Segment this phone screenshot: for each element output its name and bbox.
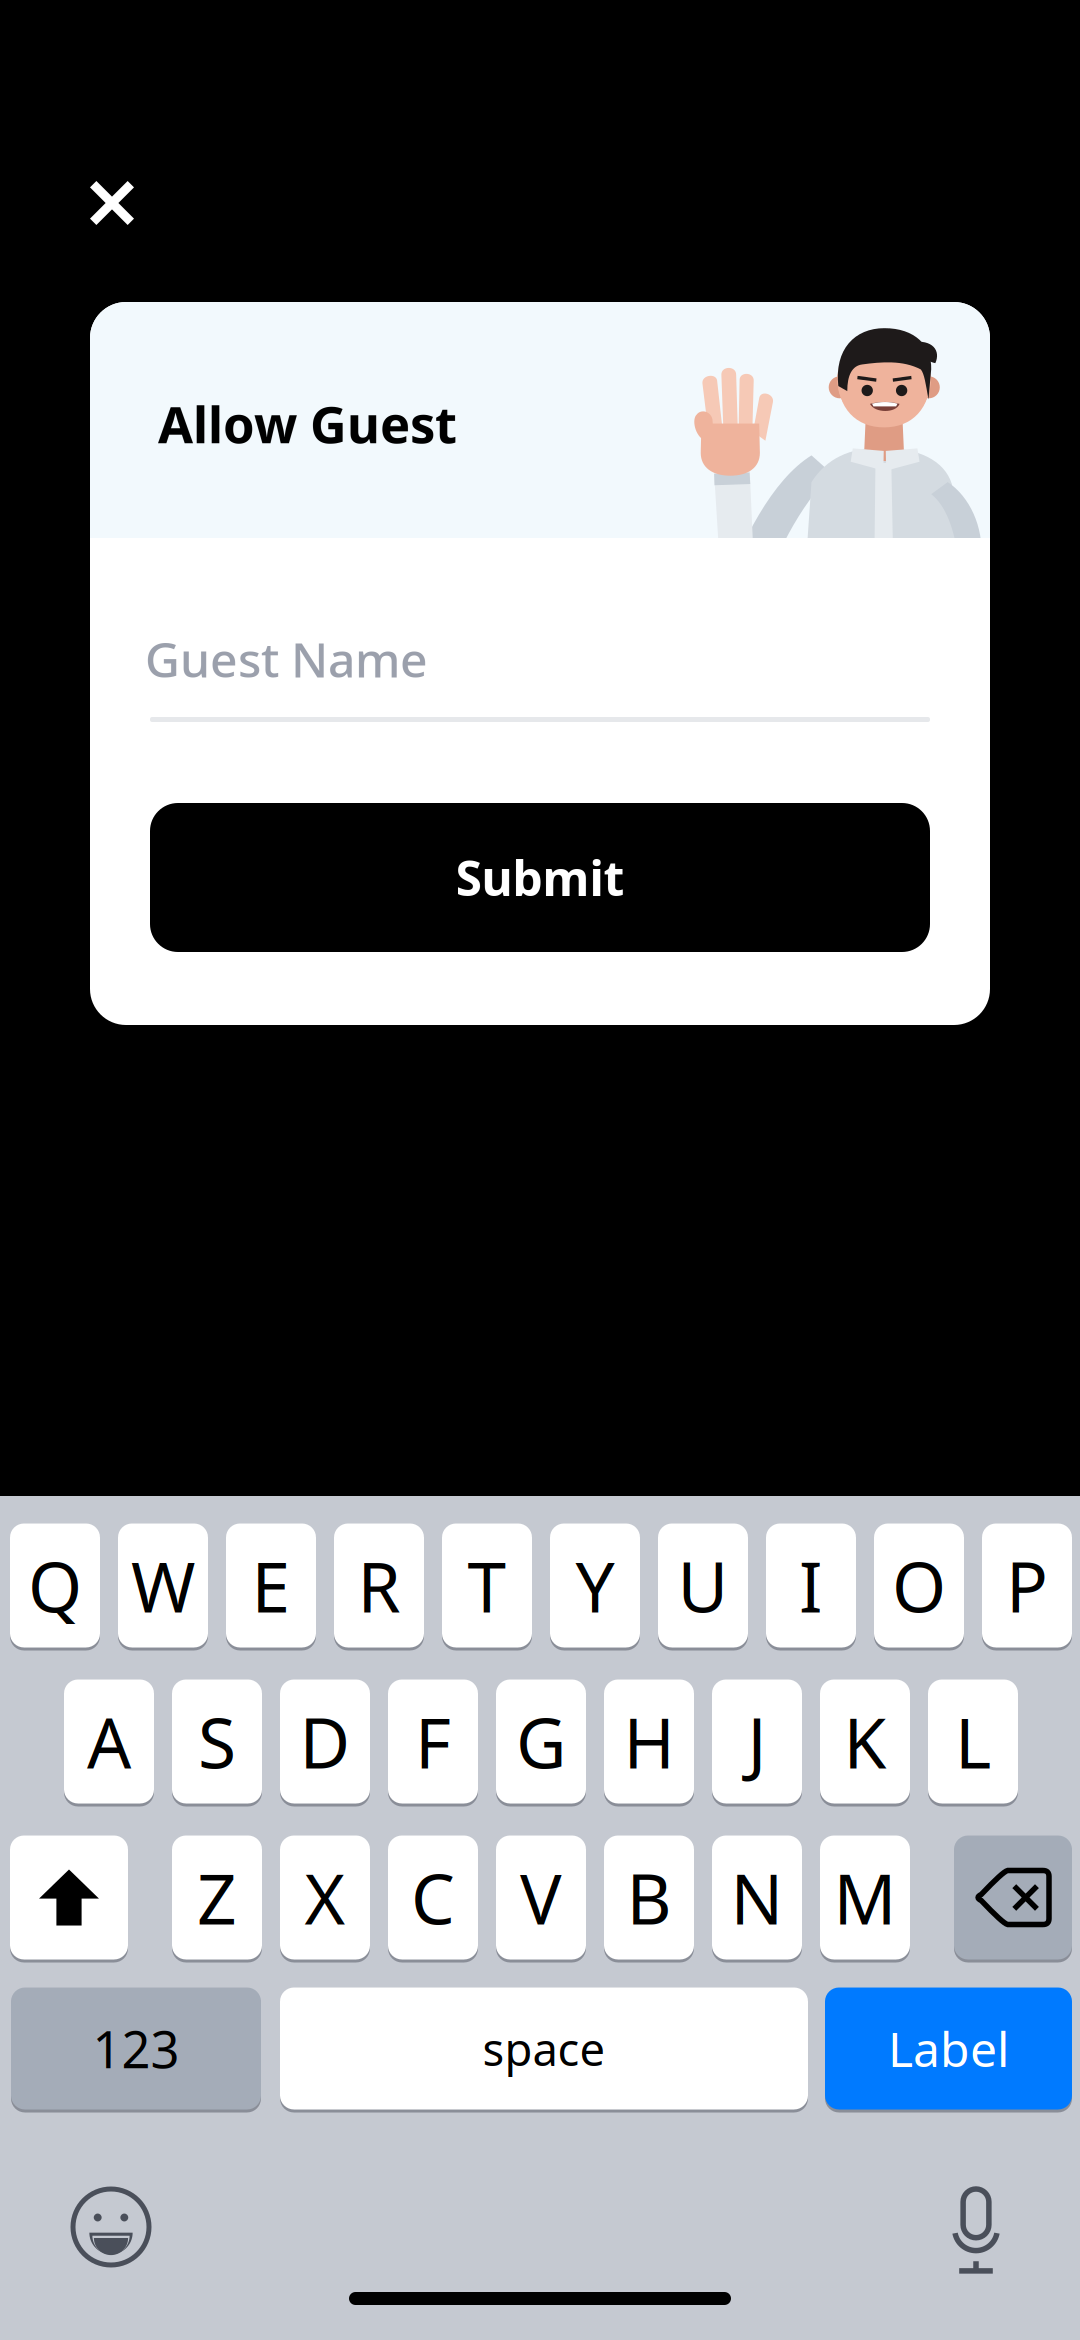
button[interactable]: H: [604, 1678, 694, 1805]
staticText: S: [198, 1695, 236, 1788]
staticText: Submit: [455, 846, 624, 909]
button[interactable]: Emoji: [56, 2177, 166, 2277]
button[interactable]: Dictation: [921, 2181, 1031, 2281]
button[interactable]: J: [712, 1678, 802, 1805]
button[interactable]: N: [712, 1834, 802, 1961]
staticText: O: [892, 1539, 946, 1632]
staticText: N: [730, 1851, 783, 1944]
button[interactable]: L: [928, 1678, 1018, 1805]
staticText: B: [626, 1851, 671, 1944]
staticText: J: [747, 1695, 766, 1788]
staticText: L: [955, 1695, 991, 1788]
staticText: W: [131, 1539, 195, 1632]
button[interactable]: C: [388, 1834, 478, 1961]
staticText: U: [677, 1539, 728, 1632]
staticText: K: [843, 1695, 886, 1788]
button[interactable]: O: [874, 1522, 964, 1649]
staticText: E: [251, 1539, 290, 1632]
button[interactable]: Shift: [10, 1834, 128, 1961]
button[interactable]: W: [118, 1522, 208, 1649]
staticText: X: [304, 1851, 345, 1944]
button[interactable]: R: [334, 1522, 424, 1649]
staticText: G: [516, 1695, 566, 1788]
staticText: Y: [575, 1539, 614, 1632]
button[interactable]: 123: [11, 1986, 261, 2111]
button[interactable]: S: [172, 1678, 262, 1805]
button[interactable]: B: [604, 1834, 694, 1961]
button[interactable]: G: [496, 1678, 586, 1805]
button[interactable]: Y: [550, 1522, 640, 1649]
staticText: D: [299, 1695, 350, 1788]
button[interactable]: space: [280, 1986, 808, 2111]
staticText: Q: [28, 1539, 82, 1632]
button[interactable]: Q: [10, 1522, 100, 1649]
staticText: R: [357, 1539, 400, 1632]
button[interactable]: F: [388, 1678, 478, 1805]
button[interactable]: K: [820, 1678, 910, 1805]
button[interactable]: M: [820, 1834, 910, 1961]
staticText: Guest Name: [145, 627, 428, 691]
button[interactable]: U: [658, 1522, 748, 1649]
staticText: Allow Guest: [158, 390, 457, 457]
button[interactable]: Label: [825, 1986, 1072, 2111]
staticText: Z: [197, 1851, 237, 1944]
button[interactable]: Close: [62, 153, 162, 253]
staticText: 123: [92, 2015, 179, 2082]
staticText: H: [623, 1695, 674, 1788]
staticText: Label: [888, 2017, 1009, 2080]
button[interactable]: I: [766, 1522, 856, 1649]
staticText: M: [833, 1851, 896, 1944]
button[interactable]: Submit: [150, 803, 930, 952]
button[interactable]: V: [496, 1834, 586, 1961]
staticText: P: [1006, 1539, 1048, 1632]
staticText: T: [467, 1539, 506, 1632]
button[interactable]: P: [982, 1522, 1072, 1649]
button[interactable]: E: [226, 1522, 316, 1649]
button[interactable]: Z: [172, 1834, 262, 1961]
staticText: I: [799, 1539, 823, 1632]
button[interactable]: T: [442, 1522, 532, 1649]
staticText: F: [415, 1695, 451, 1788]
button[interactable]: A: [64, 1678, 154, 1805]
button[interactable]: Delete: [954, 1834, 1072, 1961]
staticText: A: [87, 1695, 131, 1788]
button[interactable]: D: [280, 1678, 370, 1805]
staticText: space: [482, 2018, 605, 2079]
staticText: C: [411, 1851, 455, 1944]
staticText: V: [520, 1851, 562, 1944]
button[interactable]: X: [280, 1834, 370, 1961]
